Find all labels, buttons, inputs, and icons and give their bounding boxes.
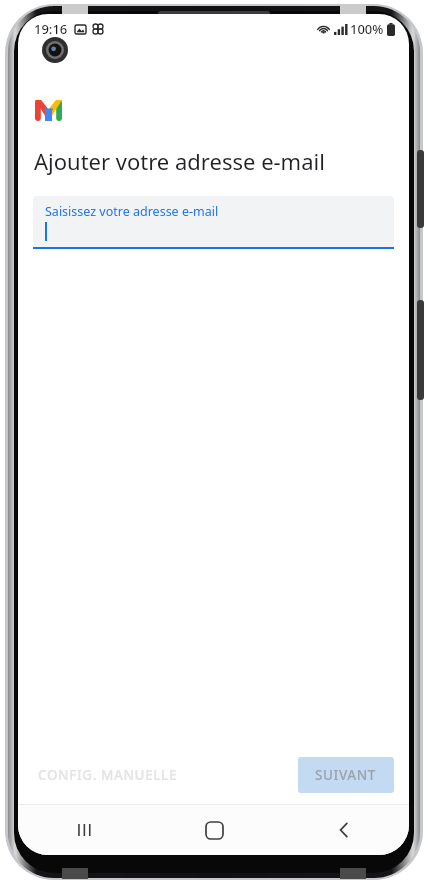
staticText: 100% [350,20,384,38]
staticText: SUIVANT [315,766,377,784]
button[interactable]: SUIVANT [298,757,394,793]
button[interactable]: Home [149,805,279,855]
button[interactable]: CONFIG. MANUELLE [30,758,185,792]
staticText: Ajouter votre adresse e-mail [34,146,325,176]
button[interactable]: Recent apps [18,805,149,855]
staticText: CONFIG. MANUELLE [38,766,177,784]
button[interactable]: Saisissez votre adresse e-mail [33,196,394,249]
button[interactable]: Back [279,805,409,855]
staticText: Saisissez votre adresse e-mail [45,203,219,220]
staticText: 19:16 [34,20,68,38]
